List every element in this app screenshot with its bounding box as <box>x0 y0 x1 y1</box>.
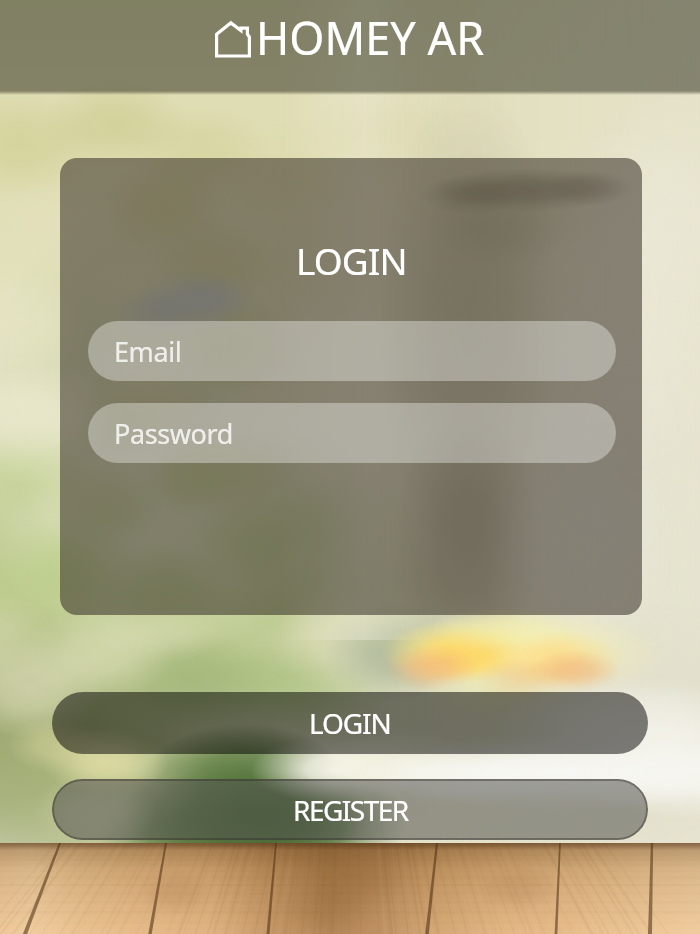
staticText: LOGIN <box>296 235 407 285</box>
button[interactable]: Password <box>88 403 616 463</box>
staticText: HOMEY AR <box>256 7 485 68</box>
button[interactable]: Email <box>88 321 616 381</box>
staticText: Password <box>114 415 233 452</box>
staticText: Email <box>114 333 182 370</box>
staticText: REGISTER <box>293 791 408 829</box>
button[interactable]: LOGIN <box>52 692 648 754</box>
button[interactable]: REGISTER <box>52 779 648 840</box>
other: Home <box>215 14 251 62</box>
staticText: LOGIN <box>309 704 391 742</box>
